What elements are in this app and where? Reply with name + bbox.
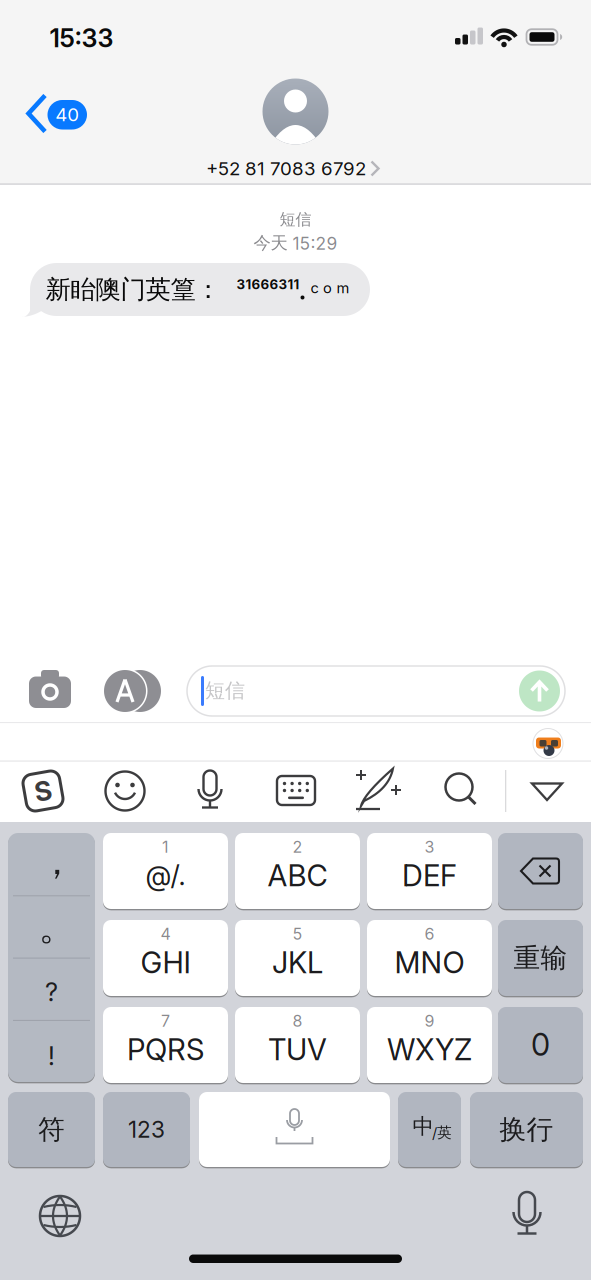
staticText: 符 [38, 1113, 65, 1146]
staticText: DEF [402, 858, 457, 893]
staticText: 换行 [499, 1113, 553, 1146]
staticText: JKL [272, 945, 323, 980]
staticText: ? [45, 977, 58, 1007]
staticText: 9 [424, 1012, 434, 1030]
staticText: 8 [292, 1012, 302, 1030]
staticText: WXYZ [387, 1032, 472, 1067]
staticText: 123 [128, 1116, 165, 1143]
staticText: 。 [38, 904, 75, 950]
staticText: S [34, 775, 51, 807]
staticText: 6 [424, 925, 434, 943]
staticText: 5 [292, 925, 302, 943]
staticText: @/. [145, 860, 185, 891]
staticText: 重输 [513, 942, 567, 974]
staticText: TUV [268, 1032, 327, 1067]
staticText: PQRS [127, 1032, 204, 1067]
staticText: MNO [394, 945, 464, 980]
staticText: 40 [55, 103, 79, 125]
staticText: 短信 [279, 210, 311, 229]
staticText: 中 [412, 1113, 433, 1140]
staticText: 31666311 [236, 277, 299, 292]
staticText: 0 [531, 1026, 550, 1063]
staticText: 今天 15:29 [253, 232, 337, 254]
staticText: 4 [160, 925, 170, 943]
staticText: ! [48, 1041, 55, 1071]
staticText: 7 [161, 1012, 170, 1030]
staticText: 15:33 [49, 23, 113, 53]
staticText: 新眙隩门英篁： [45, 274, 220, 305]
staticText: /英 [432, 1123, 452, 1141]
staticText: 2 [292, 838, 302, 856]
staticText: 1 [162, 838, 169, 856]
staticText: 3 [424, 838, 434, 856]
staticText: GHI [140, 945, 190, 980]
staticText: com [310, 279, 349, 297]
staticText: ABC [267, 858, 327, 893]
staticText: 短信 [205, 678, 245, 703]
staticText: +52 81 7083 6792 [206, 157, 366, 179]
staticText: ， [39, 840, 75, 884]
